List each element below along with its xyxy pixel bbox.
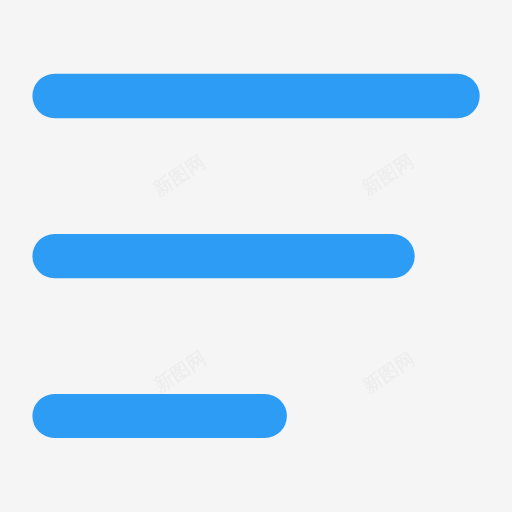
- button[interactable]: Align left: [0, 0, 512, 512]
